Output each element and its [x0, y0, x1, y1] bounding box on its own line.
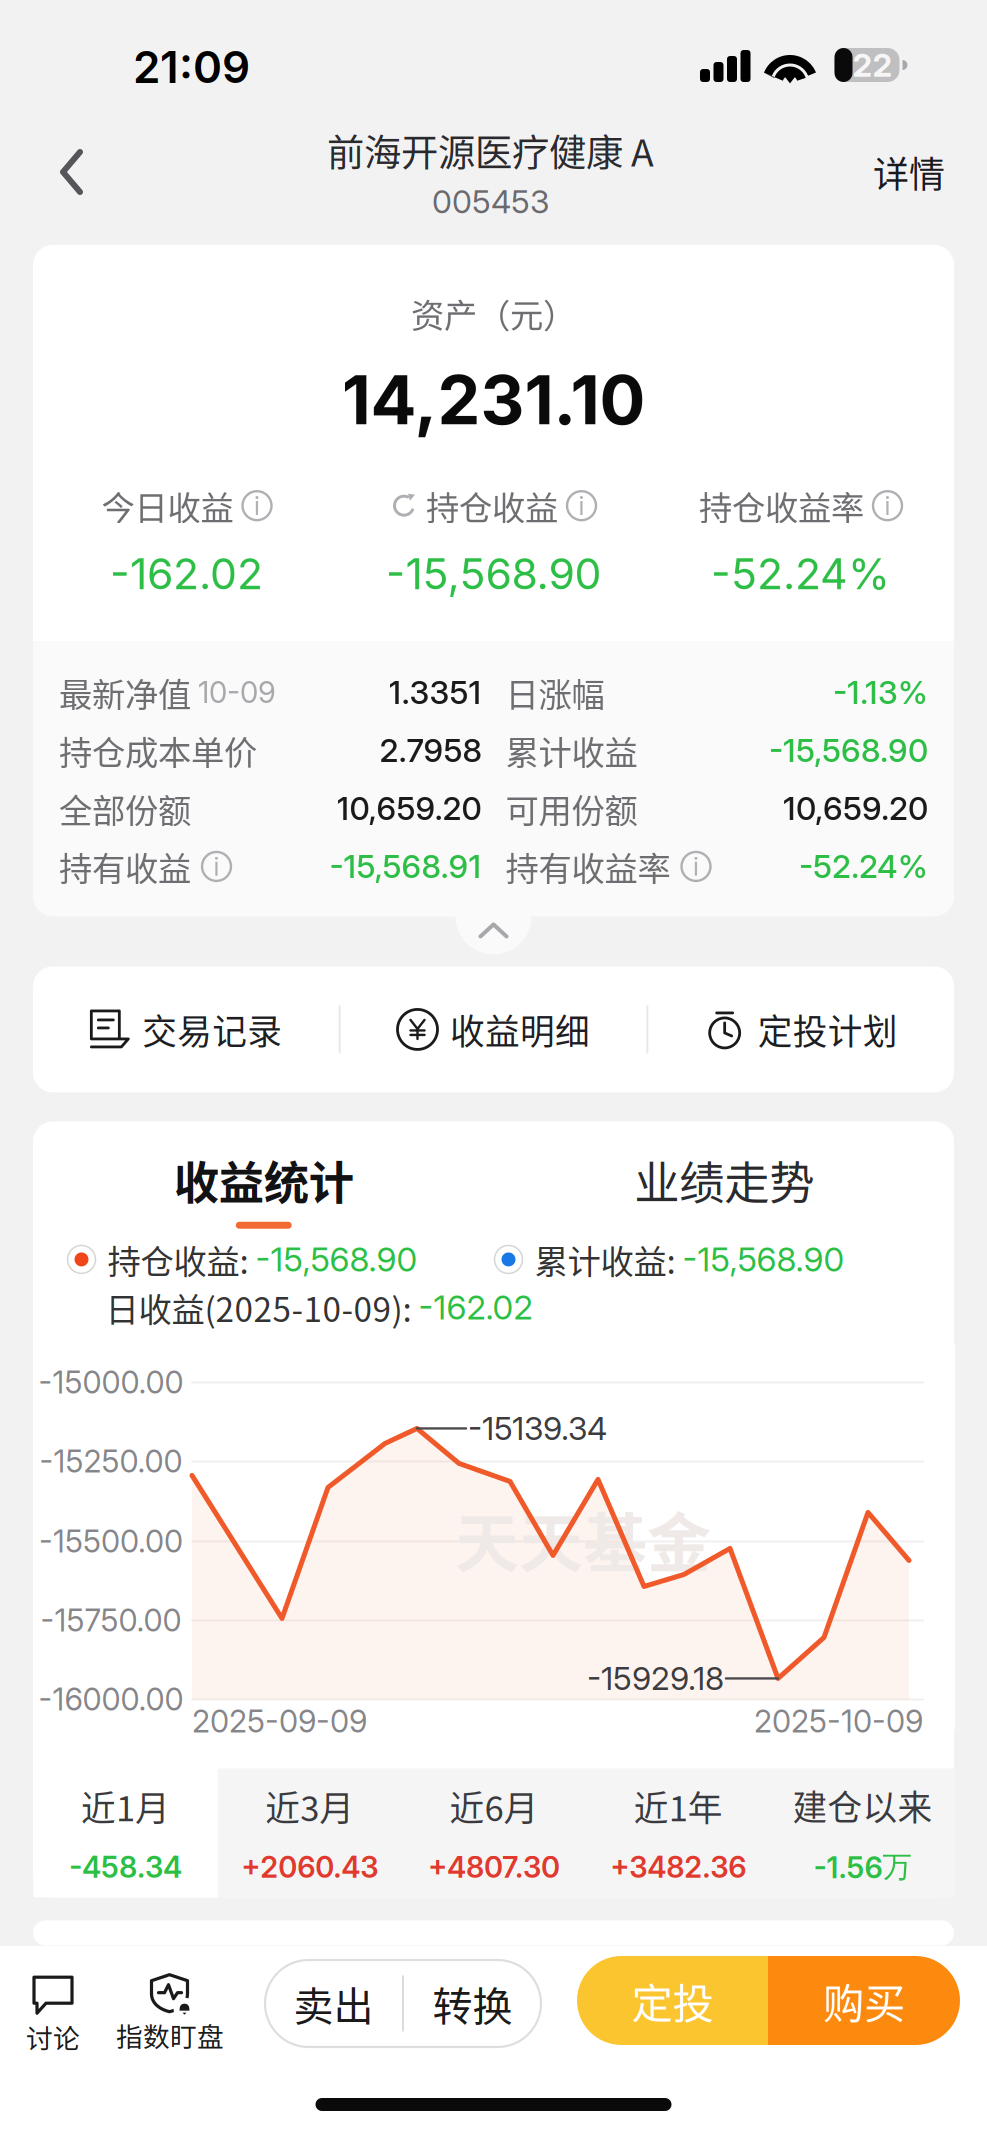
button[interactable]: 近1月	[33, 1768, 218, 1897]
staticText: -1.56万	[813, 1849, 911, 1886]
staticText: 近1月	[81, 1781, 170, 1831]
staticText: 持有收益率	[505, 842, 670, 891]
button[interactable]: 近1年	[586, 1768, 770, 1897]
staticText: 日收益(2025-10-09):	[105, 1283, 418, 1332]
staticText: 2025-10-09	[754, 1703, 923, 1740]
staticText: -458.34	[69, 1849, 182, 1885]
staticText: +3482.36	[610, 1849, 746, 1885]
staticText: 定投计划	[758, 1004, 898, 1054]
staticText: 今日收益	[101, 481, 233, 530]
staticText: 持仓成本单价	[59, 726, 257, 775]
staticText: 收益统计	[174, 1147, 354, 1213]
button[interactable]: 近3月	[218, 1768, 402, 1897]
button[interactable]: 收益明细	[341, 966, 646, 1092]
staticText: 累计收益:	[534, 1235, 682, 1284]
staticText: 可用份额	[505, 784, 637, 833]
staticText: 持仓收益	[426, 481, 558, 530]
button[interactable]: 购买	[768, 1956, 960, 2045]
staticText: -15750.00	[40, 1602, 181, 1639]
staticText: 转换	[432, 1974, 512, 2032]
staticText: 购买	[823, 1971, 905, 2030]
staticText: 卖出	[293, 1974, 373, 2032]
staticText: 近1年	[634, 1781, 723, 1831]
staticText: 持仓收益率	[699, 481, 864, 530]
staticText: 交易记录	[142, 1004, 282, 1054]
staticText: 10,659.20	[783, 789, 928, 828]
staticText: +2060.43	[241, 1849, 378, 1885]
staticText: -15,568.90	[255, 1239, 417, 1280]
staticText: 持仓收益:	[107, 1235, 255, 1284]
staticText: 讨论	[26, 2017, 80, 2056]
staticText: i	[884, 490, 890, 521]
button[interactable]: 交易记录	[33, 966, 339, 1092]
staticText: i	[693, 851, 699, 882]
staticText: -1.13%	[833, 673, 928, 712]
button[interactable]: 定投	[577, 1956, 768, 2045]
button[interactable]: 收益统计	[33, 1157, 494, 1218]
staticText: 累计收益	[505, 726, 637, 775]
staticText: -162.02	[110, 548, 263, 599]
staticText: +4807.30	[428, 1849, 560, 1885]
staticText: -15500.00	[39, 1523, 183, 1560]
staticText: 持有收益	[59, 842, 191, 891]
staticText: -162.02	[418, 1287, 532, 1328]
staticText: -16000.00	[38, 1681, 183, 1718]
button[interactable]: 卖出	[265, 1960, 402, 2047]
staticText: -15250.00	[39, 1443, 182, 1480]
staticText: 2.7958	[379, 731, 481, 770]
staticText: i	[213, 851, 219, 882]
staticText: i	[254, 490, 260, 521]
staticText: 14,231.10	[341, 358, 645, 441]
staticText: 指数盯盘	[116, 2016, 224, 2054]
staticText: 近3月	[265, 1781, 354, 1831]
staticText: 业绩走势	[634, 1147, 814, 1213]
staticText: 22	[852, 46, 892, 84]
button[interactable]: 返回	[24, 118, 120, 226]
staticText: -15929.18	[587, 1659, 724, 1698]
staticText: 收益明细	[450, 1004, 590, 1054]
button[interactable]: 近6月	[402, 1768, 586, 1897]
button[interactable]: 业绩走势	[494, 1157, 954, 1218]
button[interactable]: 详情	[861, 118, 957, 226]
staticText: -15,568.90	[682, 1239, 844, 1280]
staticText: -15,568.91	[329, 847, 481, 886]
button[interactable]: 转换	[404, 1960, 541, 2047]
button[interactable]: 定投计划	[648, 966, 954, 1092]
staticText: 2025-09-09	[192, 1703, 367, 1740]
staticText: 10-09	[198, 675, 276, 710]
button[interactable]: 展开更多	[455, 916, 531, 954]
staticText: 21:09	[133, 40, 250, 94]
staticText: 建仓以来	[792, 1780, 932, 1831]
button[interactable]: 讨论	[1, 1968, 105, 2062]
button[interactable]: 建仓以来	[770, 1768, 954, 1897]
staticText: 前海开源医疗健康 A	[327, 123, 654, 177]
staticText: 近6月	[449, 1781, 538, 1831]
staticText: -15,568.90	[385, 548, 601, 599]
staticText: 全部份额	[59, 784, 191, 833]
staticText: 005453	[432, 182, 549, 221]
staticText: -15000.00	[38, 1364, 183, 1401]
staticText: 详情	[873, 146, 945, 198]
staticText: 10,659.20	[336, 789, 481, 828]
staticText: i	[578, 490, 584, 521]
staticText: 资产（元）	[411, 289, 576, 337]
staticText: -15139.34	[468, 1409, 607, 1448]
staticText: 1.3351	[388, 673, 481, 712]
staticText: -52.24%	[711, 548, 890, 599]
staticText: 天天基金	[455, 1492, 711, 1585]
staticText: -52.24%	[799, 847, 928, 886]
staticText: -15,568.90	[769, 731, 928, 770]
staticText: 定投	[631, 1971, 713, 2030]
staticText: 最新净值	[59, 668, 191, 717]
button[interactable]: 指数盯盘	[110, 1966, 230, 2060]
staticText: 日涨幅	[505, 668, 604, 717]
